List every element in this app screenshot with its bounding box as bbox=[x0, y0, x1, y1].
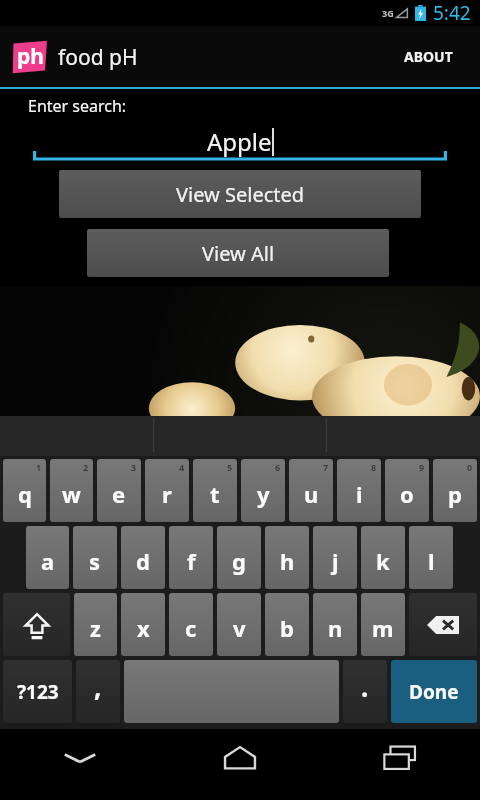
button[interactable]: b bbox=[265, 593, 309, 656]
button[interactable]: Apple bbox=[33, 120, 447, 162]
staticText: j bbox=[332, 546, 339, 576]
staticText: o bbox=[400, 479, 414, 509]
button[interactable]: Backspace bbox=[409, 593, 477, 656]
staticText: b bbox=[280, 613, 294, 643]
staticText: t bbox=[210, 479, 220, 509]
button[interactable]: l bbox=[409, 526, 453, 589]
staticText: w bbox=[62, 479, 81, 509]
button[interactable]: f bbox=[169, 526, 213, 589]
staticText: View All bbox=[202, 240, 275, 267]
button[interactable]: View Selected bbox=[59, 170, 421, 218]
button[interactable]: d bbox=[121, 526, 165, 589]
staticText: 5 bbox=[227, 461, 233, 473]
staticText: 9 bbox=[419, 461, 425, 473]
staticText: a bbox=[41, 546, 55, 576]
button[interactable]: h bbox=[265, 526, 309, 589]
button[interactable]: 2 bbox=[50, 459, 93, 522]
button[interactable]: 7 bbox=[289, 459, 333, 522]
button[interactable]: Done bbox=[391, 660, 477, 723]
staticText: 3G bbox=[382, 7, 394, 19]
staticText: n bbox=[328, 613, 343, 643]
staticText: food pH bbox=[58, 43, 138, 72]
staticText: . bbox=[361, 669, 369, 704]
staticText: i bbox=[356, 479, 363, 509]
button[interactable]: 1 bbox=[3, 459, 46, 522]
staticText: m bbox=[372, 613, 394, 643]
staticText: v bbox=[233, 613, 246, 643]
button[interactable]: 4 bbox=[145, 459, 189, 522]
staticText: x bbox=[137, 613, 150, 643]
button[interactable]: Shift bbox=[3, 593, 70, 656]
staticText: ?123 bbox=[17, 679, 59, 705]
staticText: g bbox=[232, 546, 246, 576]
button[interactable]: Hide keyboard bbox=[0, 729, 160, 787]
button[interactable]: View All bbox=[87, 229, 389, 277]
staticText: r bbox=[162, 479, 172, 509]
button[interactable]: m bbox=[361, 593, 405, 656]
button[interactable]: a bbox=[26, 526, 69, 589]
button[interactable]: 9 bbox=[385, 459, 429, 522]
staticText: 6 bbox=[275, 461, 281, 473]
staticText: 8 bbox=[371, 461, 377, 473]
button[interactable]: s bbox=[73, 526, 117, 589]
button[interactable]: g bbox=[217, 526, 261, 589]
staticText: s bbox=[89, 546, 101, 576]
staticText: 5:42 bbox=[433, 0, 471, 26]
staticText: ph bbox=[17, 42, 44, 71]
button[interactable]: n bbox=[313, 593, 357, 656]
button[interactable]: 6 bbox=[241, 459, 285, 522]
button[interactable]: 3 bbox=[97, 459, 141, 522]
staticText: 4 bbox=[179, 461, 185, 473]
staticText: d bbox=[136, 546, 150, 576]
button[interactable]: Home bbox=[160, 729, 320, 787]
staticText: u bbox=[304, 479, 319, 509]
button[interactable]: 8 bbox=[337, 459, 381, 522]
staticText: h bbox=[280, 546, 295, 576]
staticText: 7 bbox=[323, 461, 329, 473]
button[interactable]: v bbox=[217, 593, 261, 656]
staticText: y bbox=[257, 479, 270, 509]
staticText: k bbox=[376, 546, 390, 576]
staticText: Apple bbox=[207, 125, 272, 158]
button[interactable]: Period bbox=[343, 660, 387, 723]
button[interactable]: Space bbox=[124, 660, 339, 723]
button[interactable]: z bbox=[74, 593, 117, 656]
staticText: 2 bbox=[83, 461, 89, 473]
button[interactable]: j bbox=[313, 526, 357, 589]
staticText: p bbox=[448, 479, 462, 509]
staticText: View Selected bbox=[176, 181, 305, 208]
button[interactable]: 0 bbox=[433, 459, 477, 522]
staticText: Done bbox=[409, 679, 459, 705]
staticText: ABOUT bbox=[404, 47, 453, 66]
button[interactable]: Comma bbox=[76, 660, 120, 723]
staticText: Enter search: bbox=[28, 95, 127, 117]
staticText: q bbox=[18, 479, 32, 509]
button[interactable]: ABOUT bbox=[376, 26, 480, 87]
staticText: 3 bbox=[131, 461, 137, 473]
staticText: c bbox=[185, 613, 197, 643]
button[interactable]: k bbox=[361, 526, 405, 589]
button[interactable]: x bbox=[121, 593, 165, 656]
staticText: e bbox=[112, 479, 126, 509]
staticText: z bbox=[90, 613, 101, 643]
staticText: l bbox=[428, 546, 435, 576]
staticText: f bbox=[187, 546, 196, 576]
button[interactable]: Recent apps bbox=[320, 729, 480, 787]
staticText: , bbox=[94, 669, 102, 704]
staticText: 1 bbox=[36, 461, 42, 473]
staticText: 0 bbox=[467, 461, 473, 473]
button[interactable]: 5 bbox=[193, 459, 237, 522]
button[interactable]: c bbox=[169, 593, 213, 656]
button[interactable]: ?123 bbox=[3, 660, 72, 723]
